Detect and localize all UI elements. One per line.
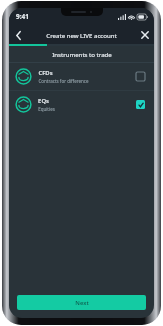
- staticText: Contracts for difference: [38, 78, 89, 84]
- button[interactable]: Not selected: [134, 70, 147, 83]
- staticText: CFDs: [38, 69, 53, 77]
- button[interactable]: Back: [9, 26, 27, 44]
- button[interactable]: Close: [136, 26, 154, 44]
- staticText: Equities: [38, 106, 55, 112]
- staticText: Instruments to trade: [52, 50, 112, 58]
- staticText: 9:41: [16, 12, 29, 21]
- button[interactable]: Selected: [134, 98, 147, 111]
- staticText: EQs: [38, 97, 49, 105]
- button[interactable]: CFDs: [9, 63, 154, 90]
- button[interactable]: Next: [17, 295, 146, 310]
- staticText: Create new LIVE account: [46, 31, 117, 39]
- staticText: Next: [75, 299, 89, 307]
- button[interactable]: EQs: [9, 91, 154, 118]
